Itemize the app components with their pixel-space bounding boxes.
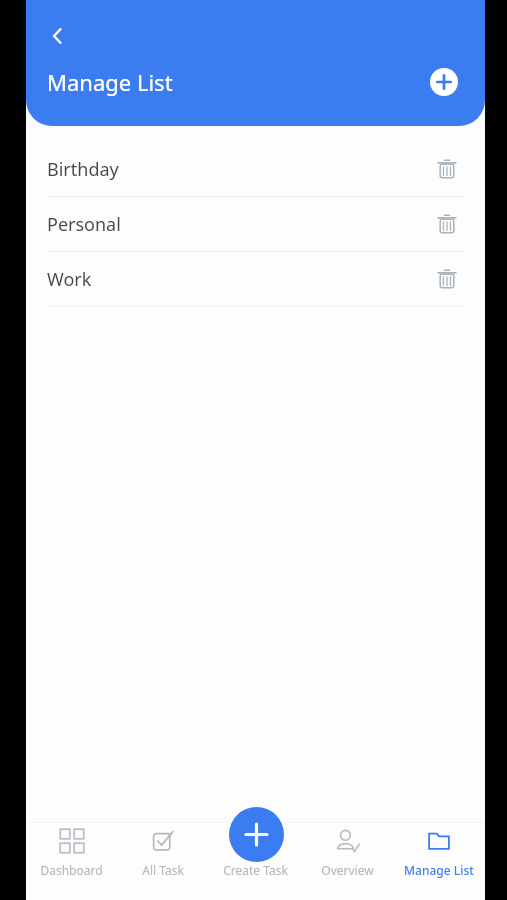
staticText: Personal <box>47 212 121 237</box>
button[interactable]: Create Task <box>209 824 301 900</box>
button[interactable]: Add list <box>424 62 464 102</box>
button[interactable]: Manage List <box>393 824 485 900</box>
button[interactable]: Create Task <box>226 804 286 864</box>
staticText: Create Task <box>223 862 288 878</box>
button[interactable]: Delete Work <box>430 262 464 296</box>
staticText: Overview <box>321 862 374 878</box>
button[interactable]: All Task <box>117 824 209 900</box>
button[interactable]: Overview <box>301 824 393 900</box>
staticText: Manage List <box>47 67 173 97</box>
button[interactable]: Back <box>36 14 80 58</box>
staticText: Work <box>47 267 92 292</box>
button[interactable]: Delete Birthday <box>430 152 464 186</box>
button[interactable]: Birthday <box>47 142 464 197</box>
button[interactable]: Work <box>47 252 464 307</box>
button[interactable]: Personal <box>47 197 464 252</box>
staticText: Birthday <box>47 157 119 182</box>
button[interactable]: Dashboard <box>26 824 117 900</box>
staticText: Manage List <box>404 862 474 878</box>
staticText: All Task <box>142 862 184 878</box>
button[interactable]: Delete Personal <box>430 207 464 241</box>
staticText: Dashboard <box>40 862 103 878</box>
